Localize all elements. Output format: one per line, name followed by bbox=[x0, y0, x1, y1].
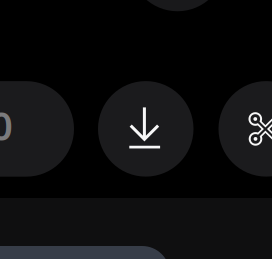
button[interactable]: Download bbox=[98, 81, 193, 177]
staticText: 10 bbox=[0, 98, 13, 151]
button[interactable]: Trim bbox=[218, 81, 272, 177]
button[interactable]: 10 bbox=[0, 81, 74, 177]
